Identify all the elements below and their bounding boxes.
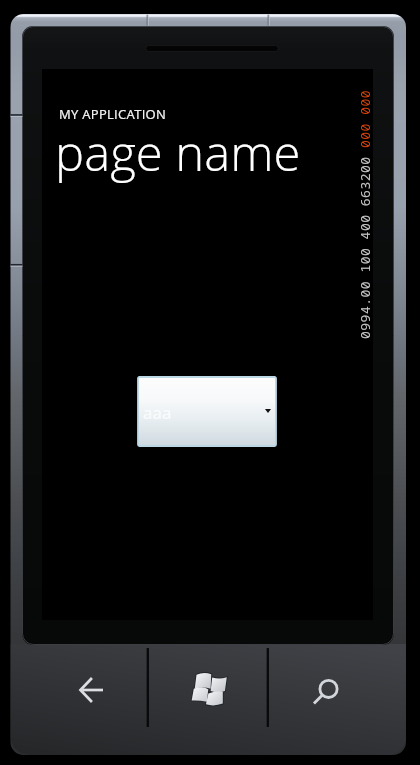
staticText: 000 000 <box>356 89 370 148</box>
button[interactable]: Back <box>23 648 148 728</box>
button[interactable]: Start <box>148 648 268 728</box>
staticText: 0994.00 100 400 663200 <box>356 148 370 339</box>
staticText: aaa <box>143 401 172 424</box>
button[interactable]: aaa <box>138 377 276 446</box>
staticText: MY APPLICATION <box>59 105 167 123</box>
button[interactable]: Search <box>268 648 393 728</box>
staticText: page name <box>55 119 301 186</box>
